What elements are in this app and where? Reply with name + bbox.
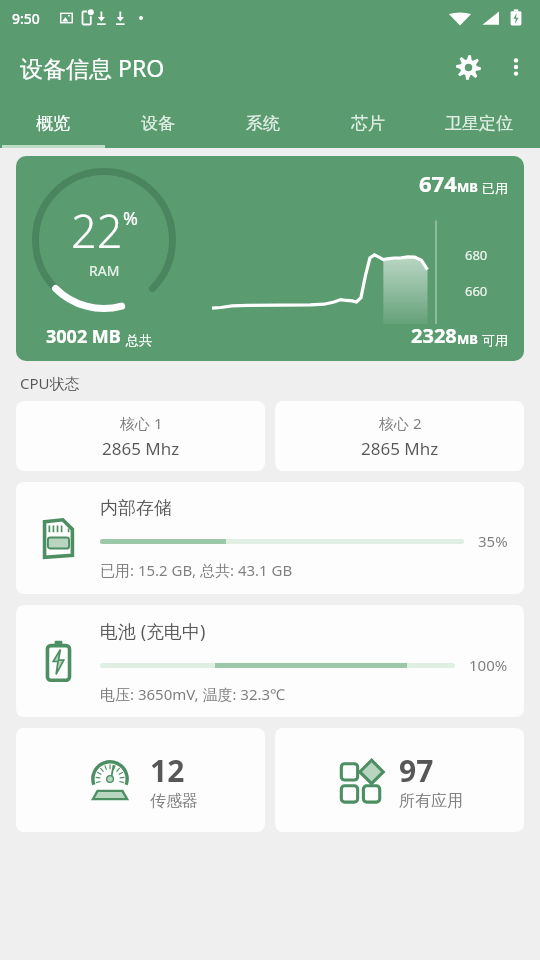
staticText: 660 [465, 282, 488, 300]
staticText: 35% [478, 531, 508, 551]
button[interactable]: 内部存储 [16, 482, 524, 594]
staticText: RAM [89, 261, 120, 280]
staticText: 核心 1 [120, 413, 163, 433]
staticText: 卫星定位 [445, 113, 513, 134]
button[interactable]: 核心 2 [275, 401, 524, 471]
staticText: 97 [399, 750, 434, 791]
staticText: 核心 2 [379, 413, 422, 433]
button[interactable]: 设备 [105, 98, 210, 148]
button[interactable]: 核心 1 [16, 401, 265, 471]
button[interactable]: 22 [16, 156, 524, 361]
button[interactable]: 卫星定位 [420, 98, 538, 148]
staticText: 芯片 [351, 113, 385, 134]
staticText: 概览 [36, 113, 70, 134]
staticText: 9:50 [12, 9, 40, 28]
button[interactable]: Settings [444, 43, 492, 91]
staticText: 设备 [141, 113, 175, 134]
staticText: 12 [150, 750, 185, 791]
staticText: 电压: 3650mV, 温度: 32.3℃ [100, 684, 286, 704]
staticText: 680 [465, 246, 488, 264]
button[interactable]: 电池 (充电中) [16, 605, 524, 717]
staticText: 所有应用 [399, 791, 463, 811]
button[interactable]: More options [492, 43, 540, 91]
staticText: 22 [71, 200, 123, 261]
staticText: MB [457, 330, 482, 348]
staticText: 总共 [126, 332, 152, 348]
button[interactable]: 概览 [0, 98, 105, 148]
staticText: 100% [469, 655, 508, 675]
staticText: 2865 Mhz [361, 437, 439, 460]
button[interactable]: 芯片 [315, 98, 420, 148]
button[interactable]: 12 [16, 728, 265, 832]
staticText: 电池 (充电中) [100, 619, 206, 644]
staticText: CPU状态 [20, 373, 80, 393]
staticText: 674 [419, 168, 457, 198]
staticText: 系统 [246, 113, 280, 134]
staticText: 内部存储 [100, 497, 172, 520]
staticText: 已用 [482, 180, 508, 196]
staticText: 可用 [482, 332, 508, 348]
staticText: 2328 [411, 322, 457, 349]
staticText: 2865 Mhz [102, 437, 180, 460]
staticText: 3002 MB [46, 324, 126, 349]
staticText: MB [457, 178, 482, 196]
button[interactable]: 系统 [210, 98, 315, 148]
staticText: 设备信息 PRO [20, 52, 165, 83]
staticText: 传感器 [150, 791, 198, 811]
button[interactable]: 97 [275, 728, 524, 832]
staticText: 已用: 15.2 GB, 总共: 43.1 GB [100, 560, 293, 580]
staticText: % [123, 206, 138, 231]
